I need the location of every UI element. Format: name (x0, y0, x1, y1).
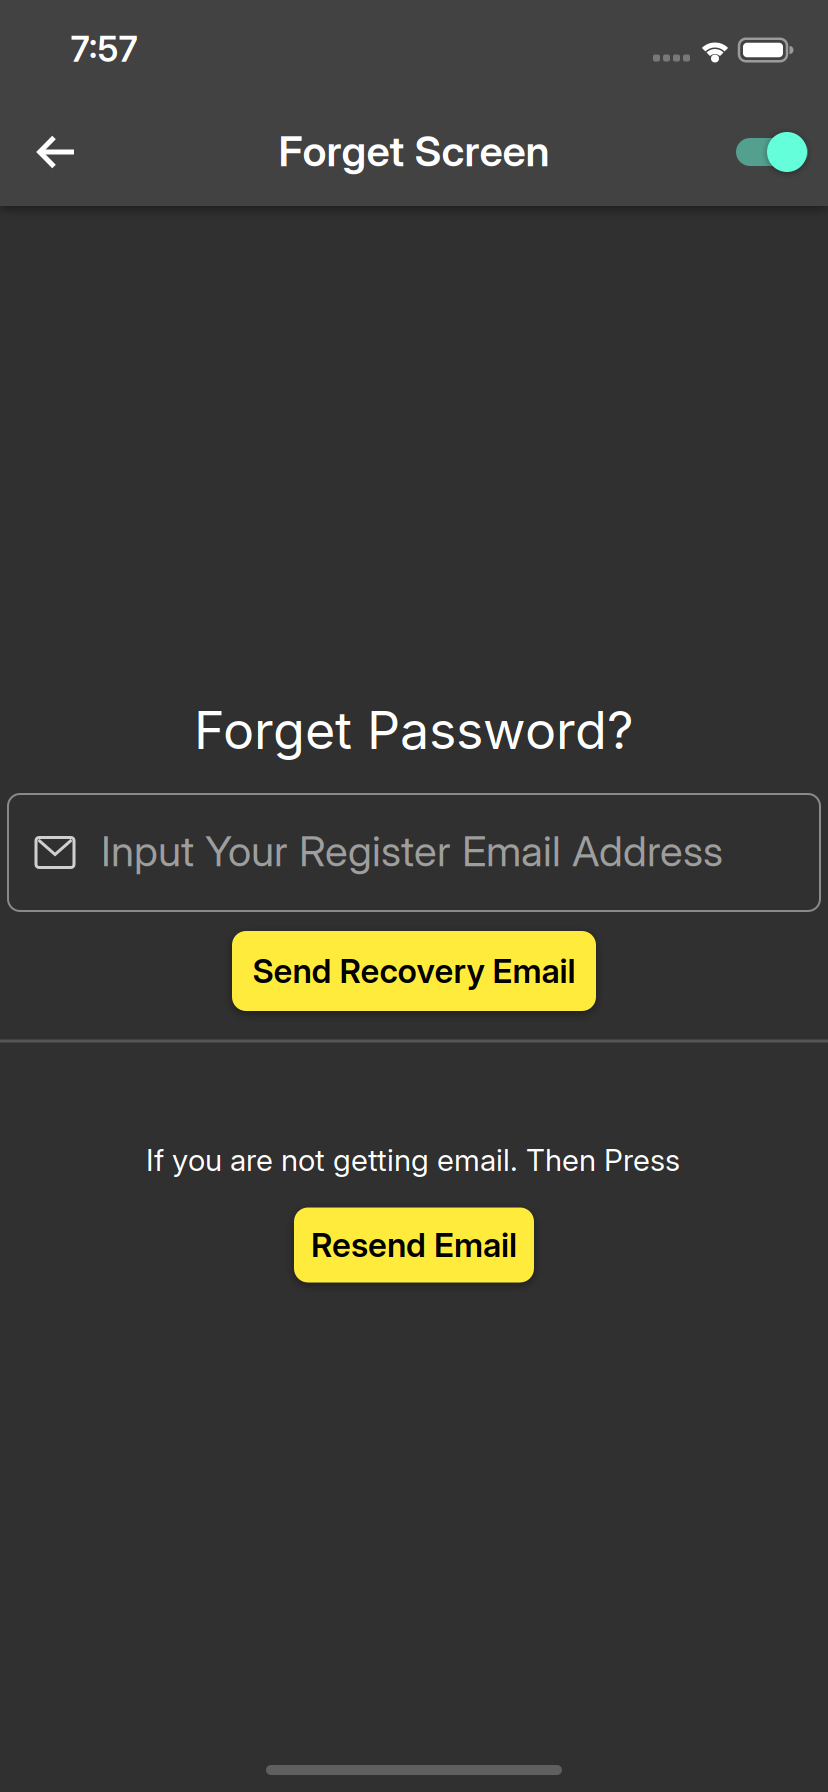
button[interactable]: Back (33, 128, 81, 176)
staticText: Resend Email (311, 1225, 517, 1265)
button[interactable]: Resend Email (294, 1207, 534, 1282)
staticText: If you are not getting email. Then Press (146, 1142, 680, 1178)
staticText: Forget Screen (278, 126, 549, 176)
button[interactable]: Toggle (736, 116, 808, 188)
staticText: Send Recovery Email (252, 951, 575, 991)
button[interactable]: Input Your Register Email Address (8, 794, 820, 911)
staticText: Input Your Register Email Address (101, 826, 723, 876)
staticText: Forget Password? (194, 698, 634, 761)
staticText: 7:57 (70, 28, 137, 70)
button[interactable]: Send Recovery Email (232, 931, 596, 1011)
